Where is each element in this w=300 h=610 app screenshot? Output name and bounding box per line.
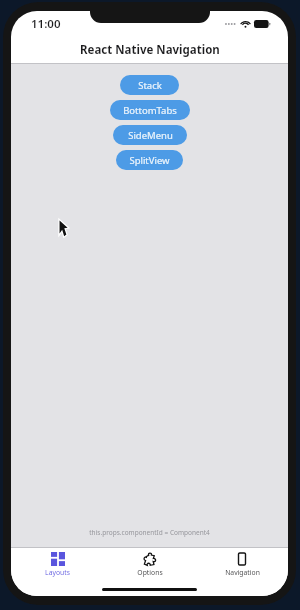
other: Options [143, 552, 157, 566]
button[interactable]: Options [104, 548, 196, 583]
staticText: Stack [138, 79, 162, 92]
button[interactable]: Stack [120, 75, 179, 95]
other: Navigation [235, 552, 249, 566]
button[interactable]: BottomTabs [110, 100, 190, 120]
staticText: Options [137, 568, 163, 577]
button[interactable]: Layouts [11, 548, 104, 583]
staticText: React Native Navigation [80, 42, 220, 58]
button[interactable]: SplitView [116, 150, 183, 170]
staticText: SideMenu [128, 129, 173, 142]
staticText: 11:00 [31, 16, 61, 32]
staticText: SplitView [129, 154, 170, 167]
button[interactable]: Navigation [196, 548, 288, 583]
other: Layouts [51, 552, 65, 566]
staticText: BottomTabs [123, 104, 177, 117]
staticText: Layouts [45, 568, 70, 577]
button[interactable]: SideMenu [113, 125, 187, 145]
staticText: this.props.componentId = Component4 [89, 528, 210, 537]
staticText: Navigation [225, 568, 260, 577]
